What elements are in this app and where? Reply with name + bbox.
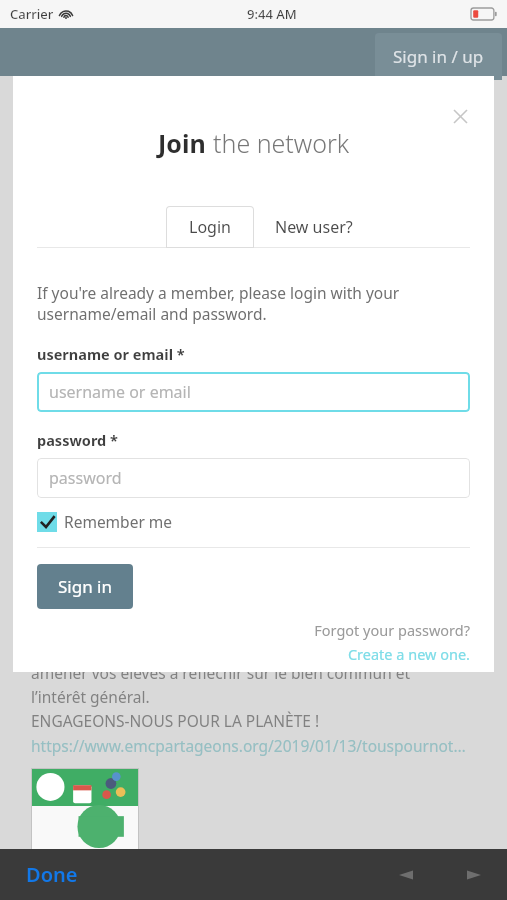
staticText: New user?: [275, 216, 353, 238]
staticText: password *: [37, 430, 118, 450]
staticText: If you're already a member, please login…: [37, 282, 400, 325]
staticText: password: [49, 467, 122, 489]
staticText: Remember me: [64, 511, 173, 532]
staticText: Sign in / up: [393, 45, 484, 68]
staticText: 9:44 AM: [247, 5, 297, 23]
staticText: amener vos élèves à réfléchir sur le bie…: [31, 662, 411, 683]
button[interactable]: New user?: [254, 206, 374, 248]
staticText: Join: [158, 126, 213, 160]
button[interactable]: Previous: [385, 854, 427, 896]
staticText: Create a new one.: [37, 644, 470, 664]
staticText: Login: [189, 216, 231, 238]
staticText: the network: [213, 126, 350, 160]
staticText: l’intérêt général.: [31, 686, 150, 707]
staticText: ENGAGEONS-NOUS POUR LA PLANÈTE !: [31, 710, 320, 731]
staticText: username or email *: [37, 344, 185, 364]
button[interactable]: Login: [166, 206, 254, 248]
button[interactable]: Remember me: [37, 511, 173, 532]
staticText: Carrier: [10, 5, 54, 23]
button[interactable]: Close: [446, 102, 474, 130]
button[interactable]: username or email: [37, 372, 470, 412]
button[interactable]: Create a new one.: [37, 644, 470, 664]
button[interactable]: Next: [453, 854, 507, 896]
staticText: Done: [26, 861, 78, 888]
staticText: https://www.emcpartageons.org/2019/01/13…: [31, 735, 466, 756]
button[interactable]: Sign in / up: [375, 33, 502, 80]
button[interactable]: password: [37, 458, 470, 498]
button[interactable]: Sign in: [37, 564, 133, 609]
staticText: Sign in: [58, 575, 112, 598]
button[interactable]: Forgot your password?: [37, 620, 470, 640]
staticText: username or email: [49, 381, 191, 403]
button[interactable]: Done: [0, 851, 96, 898]
staticText: Forgot your password?: [37, 620, 470, 640]
